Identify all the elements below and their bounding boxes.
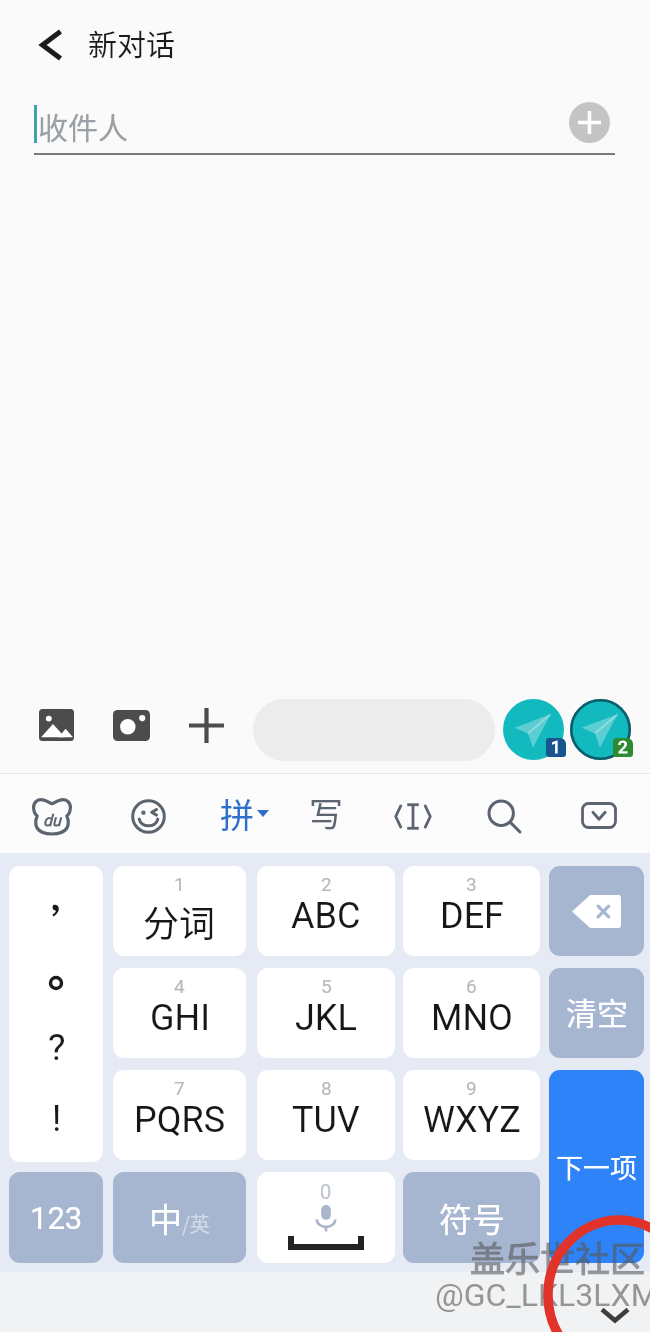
button[interactable]: Handwriting input	[294, 780, 358, 844]
button[interactable]: Hide keyboard	[567, 783, 631, 847]
staticText: 5	[321, 975, 332, 997]
staticText: 4	[174, 975, 185, 997]
button[interactable]: Message input	[253, 699, 495, 761]
staticText: 下一项	[556, 1147, 637, 1186]
staticText: 1	[551, 738, 561, 756]
staticText: 6	[466, 975, 477, 997]
staticText: 符号	[439, 1194, 505, 1242]
staticText: 1	[174, 873, 185, 895]
staticText: !	[52, 1098, 62, 1140]
staticText: JKL	[295, 997, 357, 1039]
button[interactable]: Chinese English toggle	[113, 1172, 246, 1263]
staticText: 3	[466, 873, 477, 895]
button[interactable]: Symbols	[403, 1172, 540, 1263]
button[interactable]: JKL	[257, 968, 395, 1058]
button[interactable]: Send via SIM 1	[503, 699, 564, 760]
staticText: 新对话	[88, 22, 176, 64]
staticText: du	[43, 811, 61, 830]
button[interactable]: Next field	[549, 1070, 644, 1263]
button[interactable]: PQRS	[113, 1070, 246, 1160]
staticText: /英	[182, 1209, 210, 1238]
staticText: 中	[149, 1194, 182, 1242]
staticText: MNO	[431, 997, 513, 1039]
staticText: 2	[321, 873, 332, 895]
staticText: 7	[174, 1077, 185, 1099]
button[interactable]: Search	[472, 784, 536, 848]
button[interactable]: ABC	[257, 866, 395, 956]
staticText: 8	[321, 1077, 332, 1099]
button[interactable]: Collapse keyboard	[593, 1293, 637, 1332]
button[interactable]: Send via SIM 2	[570, 699, 631, 760]
staticText: PQRS	[134, 1099, 226, 1141]
staticText: GHI	[150, 997, 210, 1039]
button[interactable]: Back	[22, 16, 80, 74]
button[interactable]: Punctuation	[9, 866, 103, 1162]
button[interactable]: DEF	[403, 866, 540, 956]
staticText: 123	[30, 1200, 83, 1236]
staticText: 写	[309, 788, 343, 837]
staticText: WXYZ	[423, 1099, 521, 1141]
button[interactable]: Pinyin input mode	[220, 781, 280, 845]
button[interactable]: Camera	[109, 703, 153, 747]
button[interactable]: Space	[257, 1172, 395, 1263]
button[interactable]: TUV	[257, 1070, 395, 1160]
button[interactable]: Clear	[549, 968, 644, 1058]
staticText: 分词	[143, 895, 216, 947]
staticText: ?	[48, 1026, 66, 1069]
staticText: 盖乐世社区	[470, 1231, 646, 1282]
staticText: @GC_LKL3LXM	[435, 1276, 650, 1314]
staticText: 清空	[566, 989, 628, 1034]
button[interactable]: Backspace	[549, 866, 644, 956]
button[interactable]: 123 keyboard	[9, 1172, 103, 1263]
staticText: 收件人	[38, 104, 128, 147]
button[interactable]: 分词	[113, 866, 246, 956]
button[interactable]: More options	[184, 703, 228, 747]
staticText: 2	[618, 738, 628, 756]
staticText: DEF	[440, 895, 504, 937]
staticText: 9	[466, 1077, 477, 1099]
button[interactable]: WXYZ	[403, 1070, 540, 1160]
button[interactable]: Gallery	[34, 703, 78, 747]
button[interactable]: Emoji	[116, 784, 180, 848]
staticText: 0	[320, 1180, 332, 1203]
staticText: ABC	[291, 895, 361, 937]
button[interactable]: GHI	[113, 968, 246, 1058]
staticText: 拼	[220, 789, 254, 838]
button[interactable]: MNO	[403, 968, 540, 1058]
button[interactable]: Baidu input	[20, 784, 84, 848]
button[interactable]: Add recipient	[569, 102, 610, 143]
staticText: TUV	[292, 1099, 360, 1141]
button[interactable]: Move cursor	[381, 784, 445, 848]
